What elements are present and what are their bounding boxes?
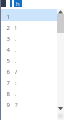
- button[interactable]: Line 6: [2, 68, 10, 77]
- button[interactable]: Menu: [0, 0, 6, 7]
- staticText: 8: [2, 90, 10, 98]
- button[interactable]: Line 3: [2, 35, 10, 44]
- staticText: 6: [2, 68, 10, 76]
- staticText: .: [15, 46, 17, 54]
- staticText: 2: [2, 24, 10, 32]
- staticText: !: [15, 24, 17, 32]
- staticText: 9: [2, 101, 10, 109]
- staticText: h: [16, 0, 20, 7]
- staticText: :: [15, 79, 17, 87]
- staticText: .: [15, 90, 17, 98]
- staticText: 5: [2, 57, 10, 65]
- button[interactable]: Active tab: [14, 0, 22, 7]
- staticText: 3: [2, 35, 10, 43]
- button[interactable]: Line 2: [2, 24, 10, 33]
- staticText: 1: [2, 13, 10, 21]
- button[interactable]: Line 8: [2, 90, 10, 99]
- staticText: 4: [2, 46, 10, 54]
- staticText: 7: [2, 79, 10, 87]
- button[interactable]: Line 4: [2, 46, 10, 55]
- button[interactable]: Line 5: [2, 57, 10, 66]
- staticText: .: [15, 57, 17, 65]
- staticText: .: [15, 35, 17, 43]
- staticText: ?: [15, 101, 18, 109]
- button[interactable]: Line 9: [2, 101, 10, 110]
- button[interactable]: Line 7: [2, 79, 10, 88]
- staticText: /: [15, 68, 18, 76]
- button[interactable]: Line 1: [2, 13, 10, 22]
- button[interactable]: Scroll bar: [57, 9, 64, 120]
